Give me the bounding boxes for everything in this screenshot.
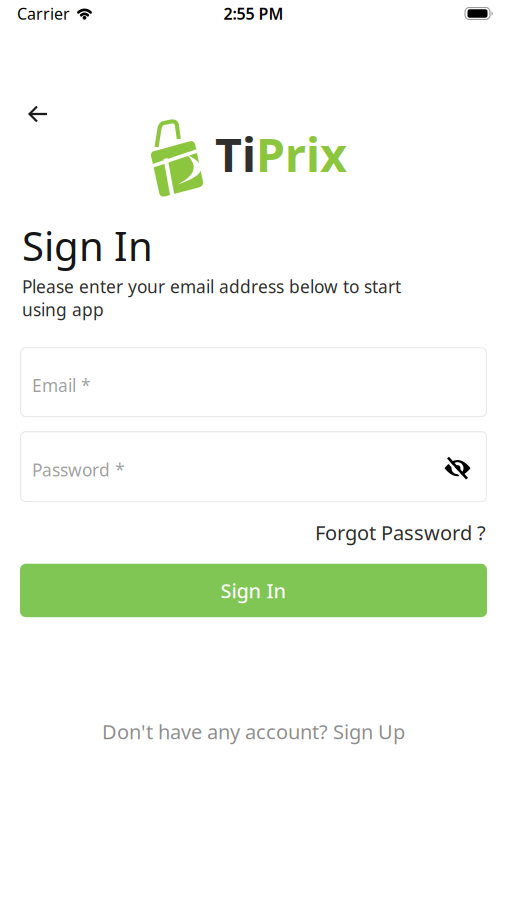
button[interactable]: Show password xyxy=(444,461,471,479)
staticText: Ti xyxy=(215,123,256,185)
staticText: Please enter your email address below to… xyxy=(22,275,401,298)
staticText: Don't have any account? xyxy=(102,718,328,745)
staticText: Sign Up xyxy=(333,718,405,745)
staticText: Carrier xyxy=(17,3,70,24)
button[interactable]: Sign In xyxy=(20,564,487,617)
button[interactable]: Sign Up xyxy=(333,718,405,745)
staticText: Sign In xyxy=(22,219,153,272)
staticText: Sign In xyxy=(220,577,286,604)
staticText: Forgot Password ? xyxy=(315,519,486,546)
staticText: Prix xyxy=(256,123,347,185)
staticText: using app xyxy=(22,298,104,321)
button[interactable]: Back xyxy=(28,106,48,122)
button[interactable]: Forgot Password ? xyxy=(315,519,486,546)
staticText: 2:55 PM xyxy=(223,3,283,24)
staticText: Email * xyxy=(32,374,91,397)
staticText: Password * xyxy=(32,458,125,481)
